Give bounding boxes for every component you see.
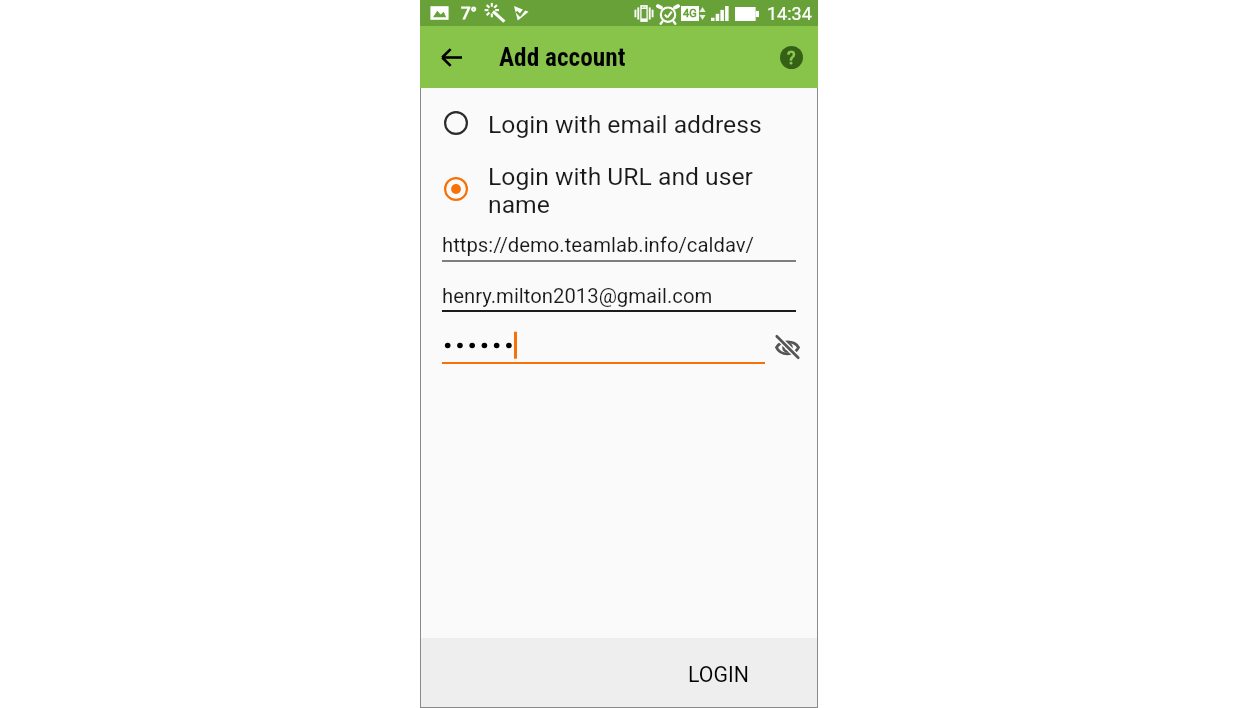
staticText: LOGIN	[688, 662, 749, 687]
staticText: 4G	[683, 7, 697, 20]
button[interactable]	[442, 330, 765, 366]
button[interactable]: Navigate up	[428, 34, 474, 80]
button[interactable]: Login with URL and user name	[420, 160, 818, 222]
staticText: Add account	[499, 43, 626, 73]
button[interactable]: https://demo.teamlab.info/caldav/	[442, 228, 796, 262]
button[interactable]: LOGIN	[668, 650, 768, 698]
button[interactable]: Show password	[771, 331, 803, 363]
staticText: ?	[787, 47, 796, 68]
staticText: Login with email address	[488, 110, 762, 139]
staticText: https://demo.teamlab.info/caldav/	[442, 233, 754, 257]
button[interactable]: henry.milton2013@gmail.com	[442, 279, 796, 312]
staticText: henry.milton2013@gmail.com	[442, 284, 713, 308]
staticText: 7°	[461, 3, 477, 23]
button[interactable]: Login with email address	[420, 97, 818, 149]
staticText: Login with URL and user name	[488, 162, 753, 219]
button[interactable]: Help	[769, 35, 813, 79]
staticText: 14:34	[767, 3, 812, 24]
